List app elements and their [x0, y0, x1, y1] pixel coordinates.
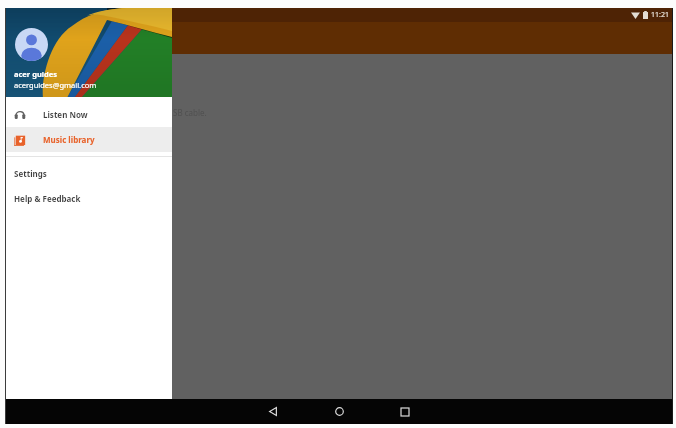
button[interactable]: Listen Now	[6, 102, 172, 127]
button[interactable]: Help & Feedback	[6, 186, 172, 211]
staticText: acer guides	[14, 69, 57, 79]
button[interactable]: Settings	[6, 161, 172, 186]
staticText: Settings	[14, 168, 47, 179]
staticText: Music library	[43, 134, 95, 145]
button[interactable]: Music library	[6, 127, 172, 152]
button[interactable]: Back	[240, 399, 306, 424]
staticText: SB cable.	[173, 107, 207, 118]
staticText: Listen Now	[43, 109, 88, 120]
staticText: Help & Feedback	[14, 193, 81, 204]
button[interactable]: Home	[306, 399, 372, 424]
staticText: 11:21	[651, 10, 669, 20]
button[interactable]: Recent apps	[372, 399, 438, 424]
staticText: acerguides@gmail.com	[14, 80, 97, 90]
